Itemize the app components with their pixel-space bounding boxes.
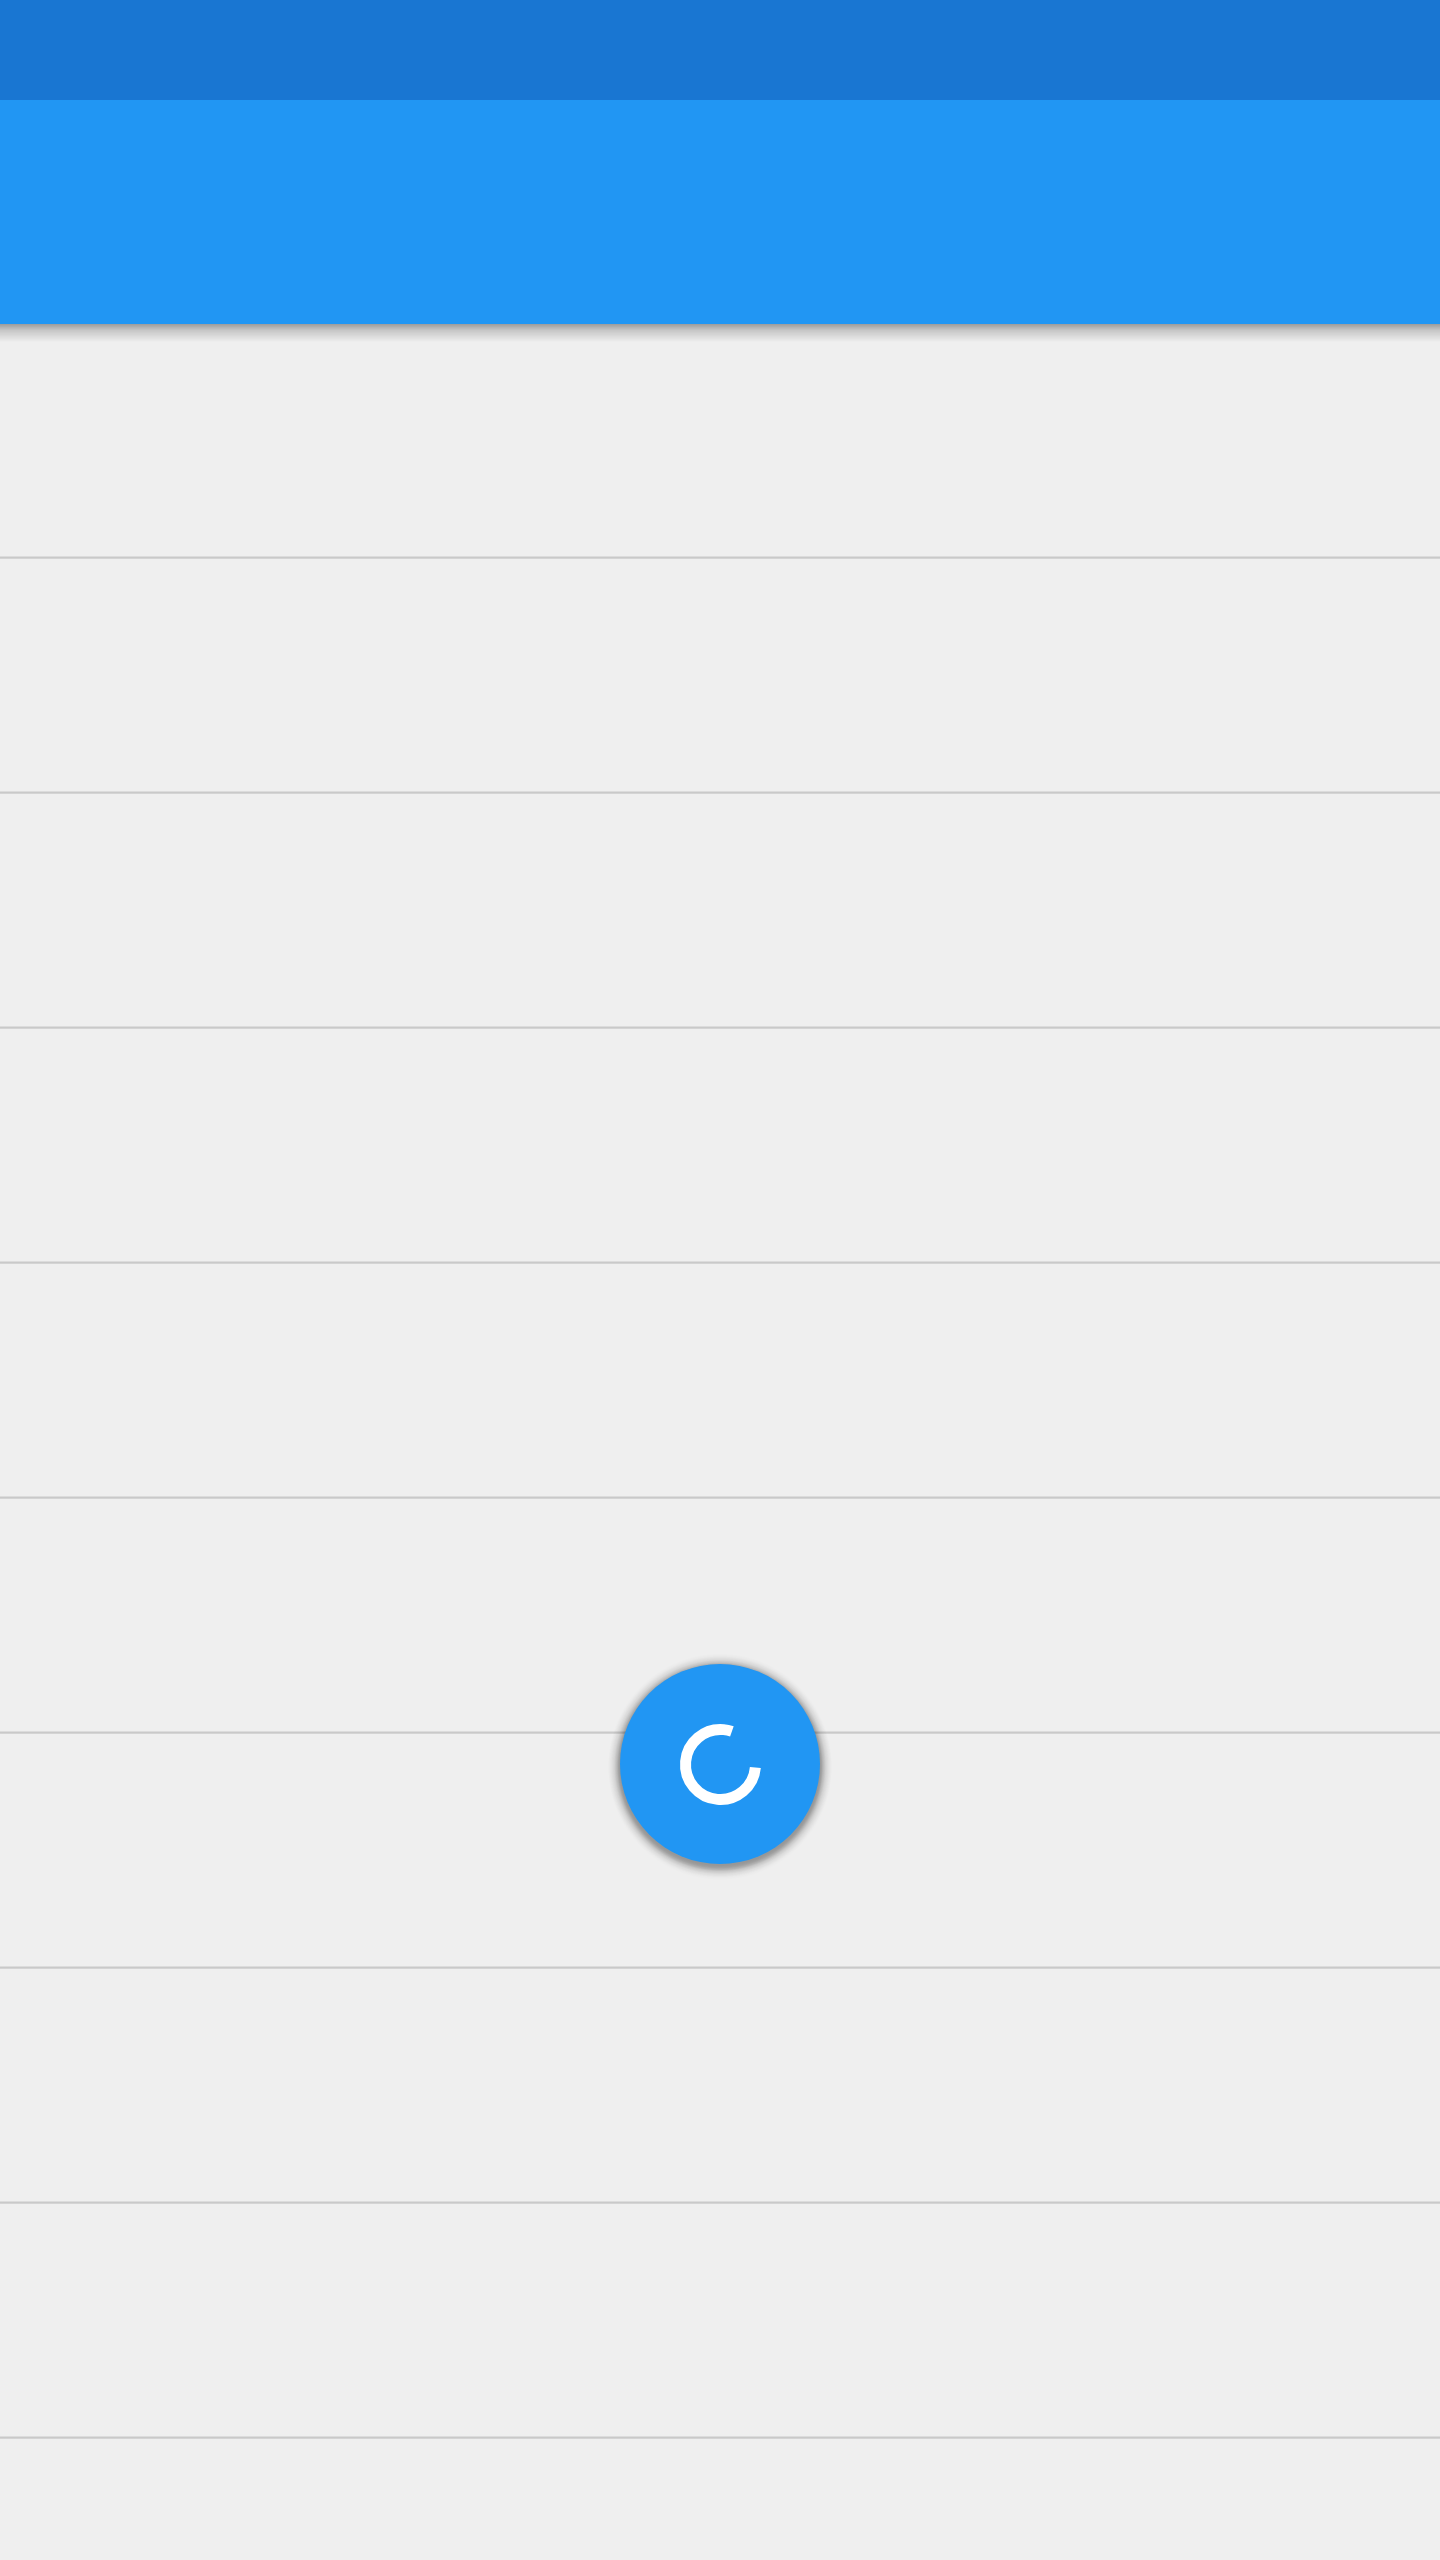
button[interactable]: Loading [620,1664,820,1864]
